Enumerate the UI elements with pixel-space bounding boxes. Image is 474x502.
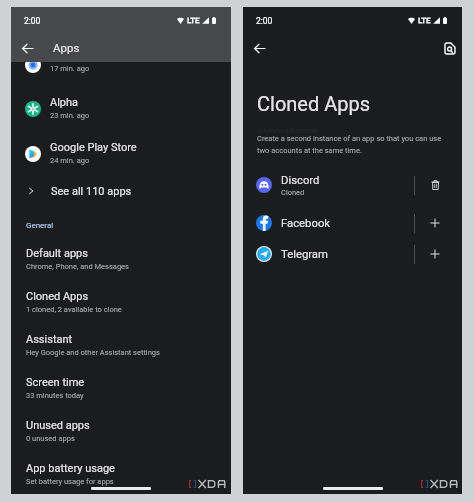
- button[interactable]: Facebook: [243, 208, 403, 238]
- button[interactable]: See all 110 apps: [11, 175, 231, 207]
- button[interactable]: Unused apps: [11, 419, 231, 462]
- staticText: Discord: [281, 174, 320, 187]
- staticText: Facebook: [281, 217, 331, 230]
- button[interactable]: Add clone: [421, 208, 449, 238]
- staticText: LTE: [418, 16, 431, 25]
- button[interactable]: Telegram: [243, 239, 403, 269]
- button[interactable]: Cloned Apps: [11, 290, 231, 333]
- staticText: 24 min. ago: [50, 156, 90, 165]
- staticText: Hey Google and other Assistant settings: [26, 348, 160, 357]
- staticText: Chrome, Phone, and Messages: [26, 262, 129, 271]
- button[interactable]: Delete clone: [421, 170, 449, 200]
- staticText: Cloned: [281, 188, 305, 197]
- button[interactable]: Assistant: [11, 333, 231, 376]
- staticText: Alpha: [50, 96, 79, 109]
- staticText: Set battery usage for apps: [26, 477, 114, 486]
- staticText: LTE: [187, 16, 200, 25]
- staticText: 2:00: [24, 16, 41, 26]
- staticText: Cloned Apps: [26, 290, 89, 303]
- staticText: 17 min. ago: [50, 64, 90, 73]
- staticText: 1 cloned, 2 available to clone: [26, 305, 122, 314]
- staticText: 0 unused apps: [26, 434, 75, 443]
- staticText: Create a second instance of an app so th…: [257, 134, 442, 143]
- button[interactable]: Alpha: [11, 96, 231, 136]
- button[interactable]: Search apps: [441, 39, 459, 57]
- staticText: App battery usage: [26, 462, 115, 475]
- staticText: 2:00: [256, 16, 273, 26]
- staticText: Telegram: [281, 248, 328, 261]
- button[interactable]: Add clone: [421, 239, 449, 269]
- button[interactable]: App battery usage: [11, 462, 231, 502]
- staticText: Assistant: [26, 333, 73, 346]
- button[interactable]: Google Play Store: [11, 141, 231, 181]
- staticText: Unused apps: [26, 419, 90, 432]
- staticText: General: [26, 221, 54, 230]
- staticText: See all 110 apps: [51, 185, 132, 198]
- button[interactable]: Discord: [243, 170, 403, 200]
- staticText: Default apps: [26, 247, 88, 260]
- button[interactable]: Back: [15, 36, 39, 60]
- button[interactable]: Back: [247, 36, 271, 60]
- button[interactable]: Default apps: [11, 247, 231, 290]
- staticText: 33 minutes today: [26, 391, 84, 400]
- staticText: 23 min. ago: [50, 111, 90, 120]
- staticText: @MishaalRahman: [257, 126, 318, 135]
- staticText: Screen time: [26, 376, 85, 389]
- staticText: two accounts at the same time.: [257, 146, 362, 155]
- staticText: Apps: [53, 41, 80, 54]
- staticText: Cloned Apps: [257, 92, 371, 115]
- staticText: Google Play Store: [50, 141, 137, 154]
- button[interactable]: Screen time: [11, 376, 231, 419]
